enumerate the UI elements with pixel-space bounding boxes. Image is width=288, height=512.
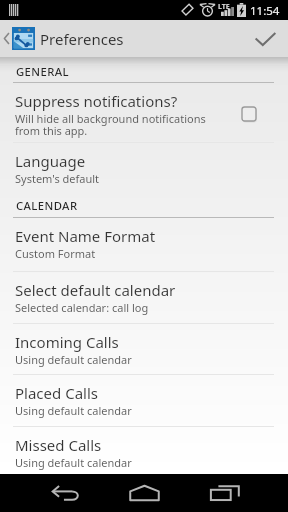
staticText: Language	[15, 151, 86, 171]
staticText: Custom Format	[15, 246, 96, 261]
staticText: Preferences	[40, 29, 124, 49]
button[interactable]: Language	[0, 143, 288, 218]
staticText: Event Name Format	[15, 226, 156, 246]
button[interactable]: Placed Calls	[0, 375, 288, 427]
button[interactable]: Home	[108, 474, 180, 512]
staticText: Selected calendar: call log	[15, 300, 149, 315]
staticText: Suppress notifications?	[15, 91, 178, 111]
staticText: Using default calendar	[15, 403, 132, 418]
button[interactable]: Navigate up	[0, 20, 37, 57]
button[interactable]: Incoming Calls	[0, 324, 288, 375]
staticText: Using default calendar	[15, 352, 132, 367]
staticText: LTE	[218, 2, 230, 12]
button[interactable]: Suppress notifications checkbox	[242, 83, 288, 142]
staticText: CALENDAR	[16, 198, 78, 213]
staticText: 11:54	[250, 3, 280, 19]
button[interactable]: Select default calendar	[0, 272, 288, 324]
button[interactable]: Event Name Format	[0, 218, 288, 272]
staticText: Will hide all background notifications f…	[15, 111, 206, 138]
staticText: Placed Calls	[15, 383, 98, 403]
staticText: GENERAL	[16, 64, 69, 79]
staticText: Select default calendar	[15, 280, 176, 300]
button[interactable]: Recent apps	[189, 474, 261, 512]
staticText: System's default	[15, 171, 100, 186]
button[interactable]: Suppress notifications?	[0, 83, 288, 142]
staticText: Missed Calls	[15, 435, 102, 455]
staticText: Incoming Calls	[15, 332, 119, 352]
button[interactable]: Missed Calls	[0, 427, 288, 475]
button[interactable]: Done	[243, 20, 288, 57]
button[interactable]: Back	[28, 474, 100, 512]
staticText: Using default calendar	[15, 455, 132, 470]
